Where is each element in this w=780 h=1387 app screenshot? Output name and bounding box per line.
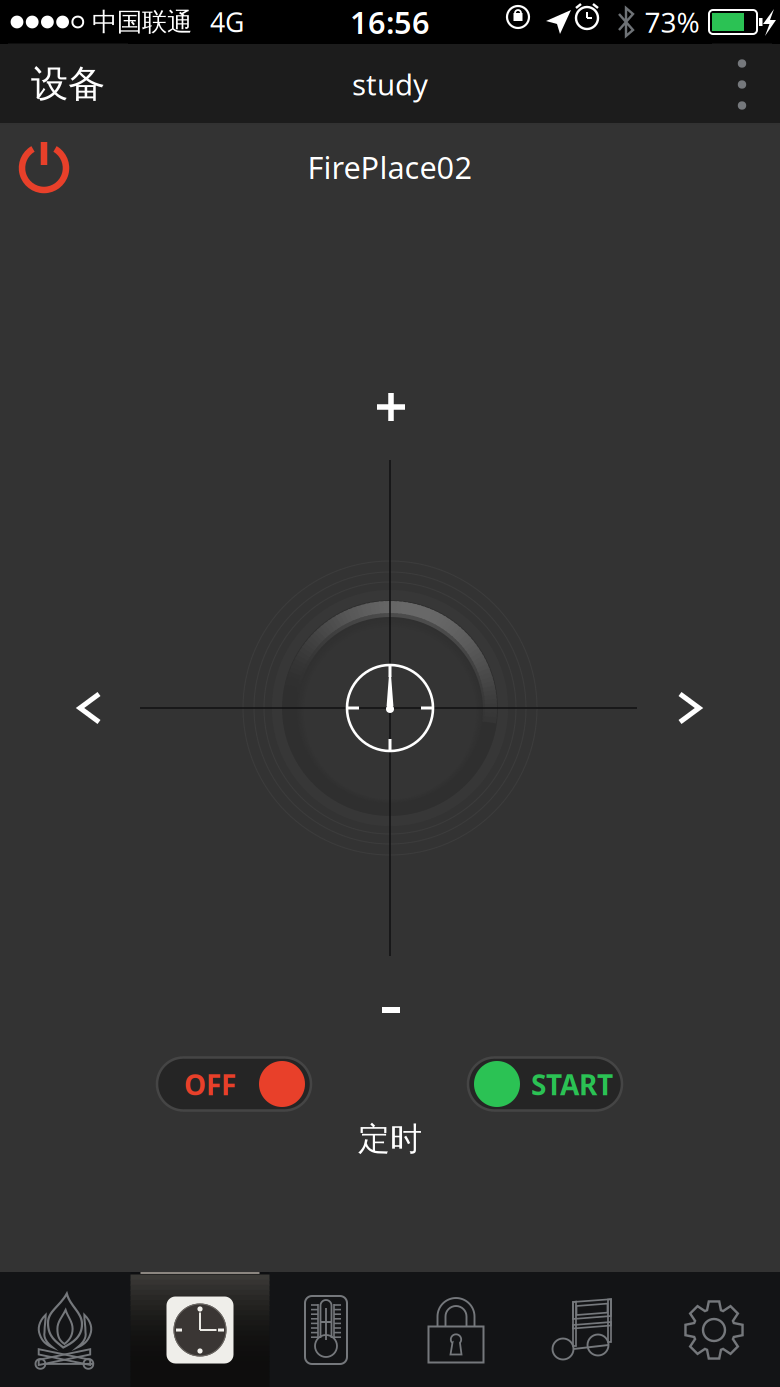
button[interactable]: Power	[18, 139, 70, 197]
staticText: 定时	[358, 1119, 422, 1159]
staticText: 73%	[644, 3, 699, 41]
button[interactable]: More options	[712, 43, 772, 124]
button[interactable]: Temperature	[271, 1272, 381, 1387]
button[interactable]: Previous	[75, 691, 107, 727]
staticText: 4G	[210, 4, 244, 40]
button[interactable]: Music	[527, 1272, 637, 1387]
button[interactable]: Fireplace	[0, 1272, 130, 1387]
staticText: 设备	[31, 61, 105, 107]
button[interactable]: OFF	[157, 1057, 311, 1110]
button[interactable]: START	[468, 1057, 622, 1110]
staticText: START	[531, 1066, 613, 1103]
button[interactable]: 设备	[8, 43, 128, 124]
button[interactable]: Next	[672, 691, 704, 727]
staticText: OFF	[184, 1066, 236, 1103]
button[interactable]: Settings	[659, 1272, 769, 1387]
staticText: 16:56	[350, 2, 430, 42]
button[interactable]: Lock	[401, 1272, 511, 1387]
staticText: 中国联通	[92, 6, 192, 37]
staticText: FirePlace02	[307, 147, 472, 187]
button[interactable]: Timer	[130, 1272, 269, 1387]
staticText: study	[352, 64, 428, 103]
